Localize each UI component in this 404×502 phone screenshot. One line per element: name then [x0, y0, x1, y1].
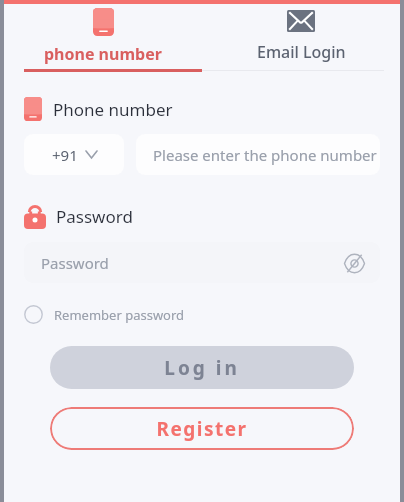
button[interactable]: Register — [50, 407, 354, 450]
staticText: Password — [41, 253, 109, 273]
button[interactable]: Password — [24, 242, 380, 283]
staticText: Please enter the phone number — [153, 145, 377, 165]
button[interactable]: Remember password — [24, 305, 185, 324]
button[interactable]: Email Login — [202, 4, 400, 68]
staticText: Log in — [164, 355, 240, 381]
staticText: Password — [56, 205, 133, 228]
button[interactable]: Log in — [50, 346, 354, 389]
staticText: Email Login — [257, 41, 346, 63]
button[interactable]: +91 — [24, 134, 124, 175]
staticText: Remember password — [54, 306, 185, 324]
button[interactable]: Show password — [342, 251, 366, 275]
staticText: Phone number — [53, 98, 173, 121]
staticText: phone number — [44, 43, 162, 65]
staticText: +91 — [52, 145, 78, 165]
button[interactable]: Please enter the phone number — [136, 134, 380, 175]
staticText: Register — [156, 416, 248, 442]
button[interactable]: phone number — [4, 4, 202, 68]
